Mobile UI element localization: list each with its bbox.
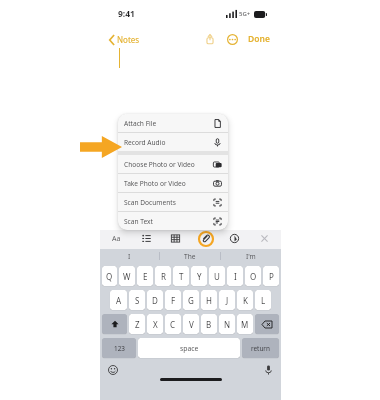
staticText: K <box>243 295 248 306</box>
button[interactable]: F <box>165 290 181 310</box>
staticText: 5G+ <box>239 10 251 18</box>
button[interactable]: Text format <box>108 230 125 247</box>
button[interactable]: Y <box>191 266 207 286</box>
staticText: P <box>269 271 274 282</box>
button[interactable]: H <box>201 290 217 310</box>
staticText: return <box>251 344 270 353</box>
button[interactable]: Z <box>129 314 145 334</box>
button[interactable]: Take Photo or Video <box>118 174 228 192</box>
staticText: 123 <box>114 344 125 353</box>
staticText: R <box>161 271 166 282</box>
staticText: E <box>143 271 148 282</box>
staticText: Q <box>106 271 113 282</box>
staticText: F <box>171 295 176 306</box>
staticText: T <box>179 271 184 282</box>
button[interactable]: X <box>147 314 163 334</box>
staticText: Done <box>248 33 270 45</box>
staticText: space <box>180 344 199 353</box>
button[interactable]: Attach File <box>118 114 228 132</box>
staticText: U <box>214 271 220 282</box>
button[interactable]: Share <box>201 30 219 48</box>
staticText: 9:41 <box>118 8 135 20</box>
staticText: Take Photo or Video <box>124 179 213 188</box>
staticText: J <box>226 295 229 306</box>
button[interactable]: space <box>138 338 240 358</box>
staticText: B <box>206 319 212 330</box>
button[interactable]: Scan Text <box>118 212 228 230</box>
button[interactable]: K <box>237 290 253 310</box>
staticText: Aa <box>112 234 121 244</box>
button[interactable]: A <box>110 290 127 310</box>
staticText: L <box>261 295 266 306</box>
button[interactable]: M <box>237 314 253 334</box>
button[interactable]: O <box>245 266 261 286</box>
staticText: O <box>250 271 257 282</box>
button[interactable]: Record Audio <box>118 133 228 151</box>
button[interactable]: return <box>242 338 279 358</box>
staticText: A <box>116 295 122 306</box>
button[interactable]: W <box>119 266 135 286</box>
staticText: G <box>188 295 194 306</box>
staticText: Y <box>197 271 202 282</box>
button[interactable]: U <box>209 266 225 286</box>
staticText: Scan Documents <box>124 198 213 207</box>
staticText: N <box>224 319 231 330</box>
button[interactable]: Choose Photo or Video <box>118 155 228 173</box>
button[interactable]: Attach <box>197 230 214 247</box>
staticText: Notes <box>117 34 140 45</box>
button[interactable]: Emoji <box>106 363 120 377</box>
staticText: S <box>135 295 140 306</box>
button[interactable]: V <box>183 314 199 334</box>
staticText: Record Audio <box>124 138 213 147</box>
staticText: X <box>153 319 158 330</box>
staticText: M <box>241 319 249 330</box>
staticText: V <box>189 319 194 330</box>
staticText: Z <box>135 319 140 330</box>
button[interactable]: I <box>227 266 243 286</box>
button[interactable]: G <box>183 290 199 310</box>
button[interactable]: Checklist <box>138 230 155 247</box>
button[interactable]: I <box>100 252 159 261</box>
button[interactable]: J <box>219 290 235 310</box>
staticText: C <box>170 319 176 330</box>
button[interactable]: E <box>137 266 153 286</box>
button[interactable]: The <box>160 252 220 261</box>
staticText: W <box>123 271 131 282</box>
button[interactable]: B <box>201 314 217 334</box>
button[interactable]: Notes <box>106 32 143 47</box>
button[interactable]: L <box>255 290 271 310</box>
staticText: H <box>206 295 212 306</box>
button[interactable]: I'm <box>221 252 281 261</box>
button[interactable]: T <box>173 266 189 286</box>
button[interactable]: Table <box>167 230 184 247</box>
button[interactable]: More options <box>223 30 241 48</box>
button[interactable]: Markup <box>226 230 243 247</box>
button[interactable]: Done <box>245 31 273 47</box>
button[interactable]: Shift <box>102 314 127 334</box>
button[interactable]: S <box>129 290 145 310</box>
button[interactable]: Dictate <box>261 363 275 377</box>
button[interactable]: C <box>165 314 181 334</box>
staticText: I'm <box>246 252 256 261</box>
staticText: Attach File <box>124 119 213 128</box>
button[interactable]: Backspace <box>255 314 279 334</box>
staticText: Choose Photo or Video <box>124 160 213 169</box>
button[interactable]: Scan Documents <box>118 193 228 211</box>
button[interactable]: Q <box>102 266 117 286</box>
button[interactable]: P <box>263 266 279 286</box>
button[interactable]: D <box>147 290 163 310</box>
button[interactable]: Close keyboard <box>256 230 273 247</box>
staticText: Scan Text <box>124 217 213 226</box>
staticText: I <box>234 271 237 282</box>
staticText: I <box>128 252 131 261</box>
button[interactable]: R <box>155 266 171 286</box>
staticText: The <box>184 252 196 261</box>
button[interactable]: N <box>219 314 235 334</box>
button[interactable]: 123 <box>102 338 136 358</box>
staticText: D <box>152 295 158 306</box>
